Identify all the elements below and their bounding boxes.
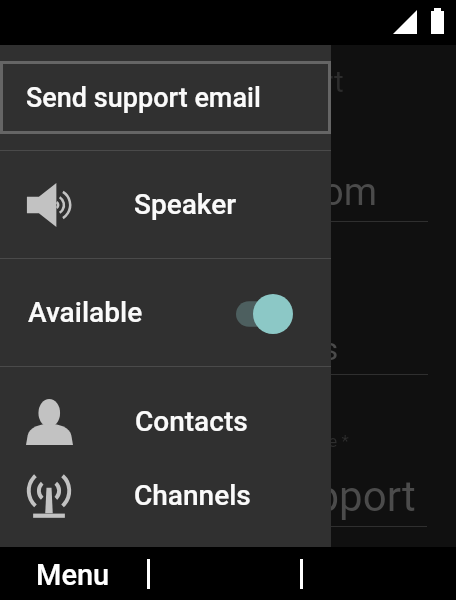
button[interactable]: Send support email: [0, 61, 331, 134]
staticText: I need support: [147, 472, 416, 521]
button[interactable]: Channels: [0, 458, 331, 532]
staticText: Message *: [268, 431, 349, 451]
button[interactable]: Available toggle: [236, 294, 292, 334]
staticText: Contact support: [128, 64, 344, 99]
staticText: Contacts: [135, 405, 248, 438]
staticText: Available: [28, 296, 143, 329]
staticText: Send support email: [26, 82, 261, 114]
button[interactable]: Speaker: [0, 151, 331, 258]
button[interactable]: Available: [0, 259, 331, 366]
staticText: Speaker: [134, 188, 237, 221]
staticText: Technical issues: [102, 330, 339, 368]
staticText: someone@mail.com: [28, 170, 378, 215]
staticText: Menu: [36, 558, 110, 592]
staticText: Channels: [134, 479, 251, 512]
button[interactable]: Contacts: [0, 384, 331, 458]
button[interactable]: Menu: [0, 547, 147, 600]
